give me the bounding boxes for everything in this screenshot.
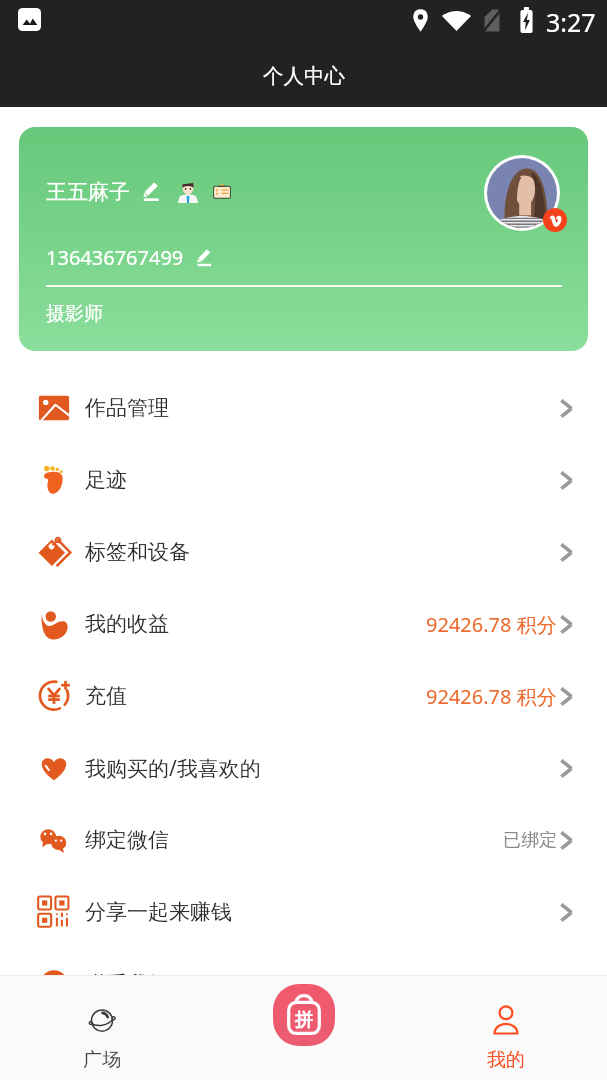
staticText: 广场 — [83, 1048, 121, 1072]
staticText: 分享一起来赚钱 — [85, 899, 232, 925]
button[interactable]: 我的 — [405, 975, 607, 1080]
staticText: 我的收益 — [85, 611, 169, 637]
button[interactable]: 拼团 — [273, 984, 335, 1046]
staticText: 作品管理 — [85, 395, 169, 421]
staticText: 摄影师 — [46, 302, 103, 326]
staticText: 我购买的/我喜欢的 — [85, 754, 261, 783]
button[interactable]: 足迹 — [0, 444, 607, 516]
button[interactable]: 我的收益 — [0, 588, 607, 660]
staticText: 92426.78 积分 — [426, 611, 557, 638]
staticText: 我的 — [487, 1048, 525, 1072]
button[interactable]: 标签和设备 — [0, 516, 607, 588]
button[interactable]: 绑定微信 — [0, 804, 607, 876]
staticText: 拼 — [295, 1009, 313, 1032]
staticText: 92426.78 积分 — [426, 683, 557, 710]
button[interactable]: 王五麻子 — [19, 127, 588, 351]
staticText: 136436767499 — [46, 244, 184, 271]
staticText: 标签和设备 — [85, 539, 190, 565]
staticText: 联系我们 — [85, 971, 169, 997]
staticText: 足迹 — [85, 467, 127, 493]
staticText: 充值 — [85, 683, 127, 709]
button[interactable]: 作品管理 — [0, 372, 607, 444]
button[interactable]: 充值 — [0, 660, 607, 732]
staticText: 已绑定 — [503, 829, 557, 852]
staticText: 王五麻子 — [46, 179, 130, 205]
button[interactable]: Avatar — [484, 155, 560, 231]
button[interactable]: 联系我们 — [0, 948, 607, 1020]
button[interactable]: 广场 — [0, 975, 203, 1080]
staticText: 绑定微信 — [85, 827, 169, 853]
staticText: 个人中心 — [263, 63, 345, 89]
staticText: 3:27 — [546, 5, 596, 39]
button[interactable]: 分享一起来赚钱 — [0, 876, 607, 948]
button[interactable]: 我购买的/我喜欢的 — [0, 732, 607, 804]
